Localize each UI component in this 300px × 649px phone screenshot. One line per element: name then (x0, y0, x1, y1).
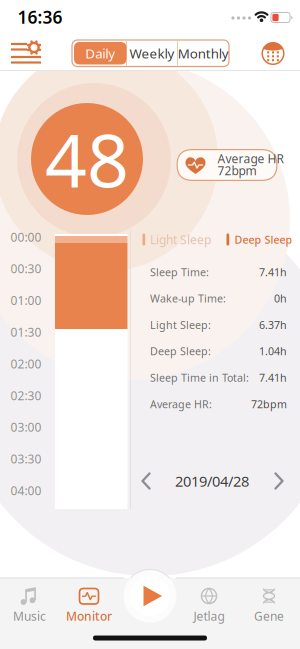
button[interactable] (134, 469, 158, 493)
staticText: 03:00 (10, 419, 41, 435)
button[interactable]: Daily (74, 42, 126, 64)
staticText: Light Sleep (150, 231, 211, 247)
button[interactable] (130, 576, 170, 616)
staticText: Sleep Time: (150, 265, 209, 279)
staticText: 16:36 (17, 5, 62, 28)
staticText: Monitor (66, 608, 112, 624)
staticText: 48 (45, 110, 129, 208)
button[interactable]: Jetlag (183, 578, 235, 628)
staticText: 02:00 (10, 356, 41, 372)
button[interactable] (267, 469, 291, 493)
staticText: Sleep Time in Total: (150, 370, 249, 385)
staticText: 0h (274, 291, 287, 305)
button[interactable]: Weekly (126, 41, 177, 65)
staticText: Average HR (217, 150, 283, 166)
button[interactable]: Monthly (177, 41, 229, 65)
staticText: 01:30 (10, 324, 41, 340)
button[interactable]: Gene (243, 578, 295, 628)
button[interactable]: Monitor (63, 578, 115, 628)
staticText: 00:30 (10, 261, 41, 277)
staticText: 7.41h (259, 265, 287, 279)
staticText: Weekly (129, 44, 174, 62)
staticText: Music (13, 608, 46, 624)
staticText: 2019/04/28 (175, 471, 249, 491)
button[interactable] (8, 38, 44, 68)
staticText: Light Sleep: (150, 318, 211, 332)
button[interactable]: Average HR (176, 149, 277, 181)
staticText: 03:30 (10, 451, 41, 467)
staticText: Daily (85, 44, 115, 62)
staticText: Gene (254, 608, 284, 624)
staticText: 72bpm (217, 162, 256, 178)
staticText: Average HR: (150, 397, 212, 411)
staticText: 1.04h (259, 344, 287, 358)
staticText: 72bpm (251, 397, 287, 411)
staticText: Wake-up Time: (150, 291, 226, 305)
staticText: Jetlag (193, 608, 224, 624)
staticText: Deep Sleep (234, 232, 292, 247)
staticText: 04:00 (10, 483, 41, 498)
staticText: 7.41h (259, 370, 287, 385)
staticText: Monthly (178, 44, 229, 62)
staticText: 6.37h (259, 318, 287, 332)
button[interactable] (258, 38, 288, 68)
staticText: Deep Sleep: (150, 344, 211, 358)
staticText: 00:00 (10, 229, 41, 245)
button[interactable]: Music (2, 578, 54, 628)
staticText: 02:30 (10, 387, 41, 403)
staticText: 01:00 (10, 292, 41, 308)
